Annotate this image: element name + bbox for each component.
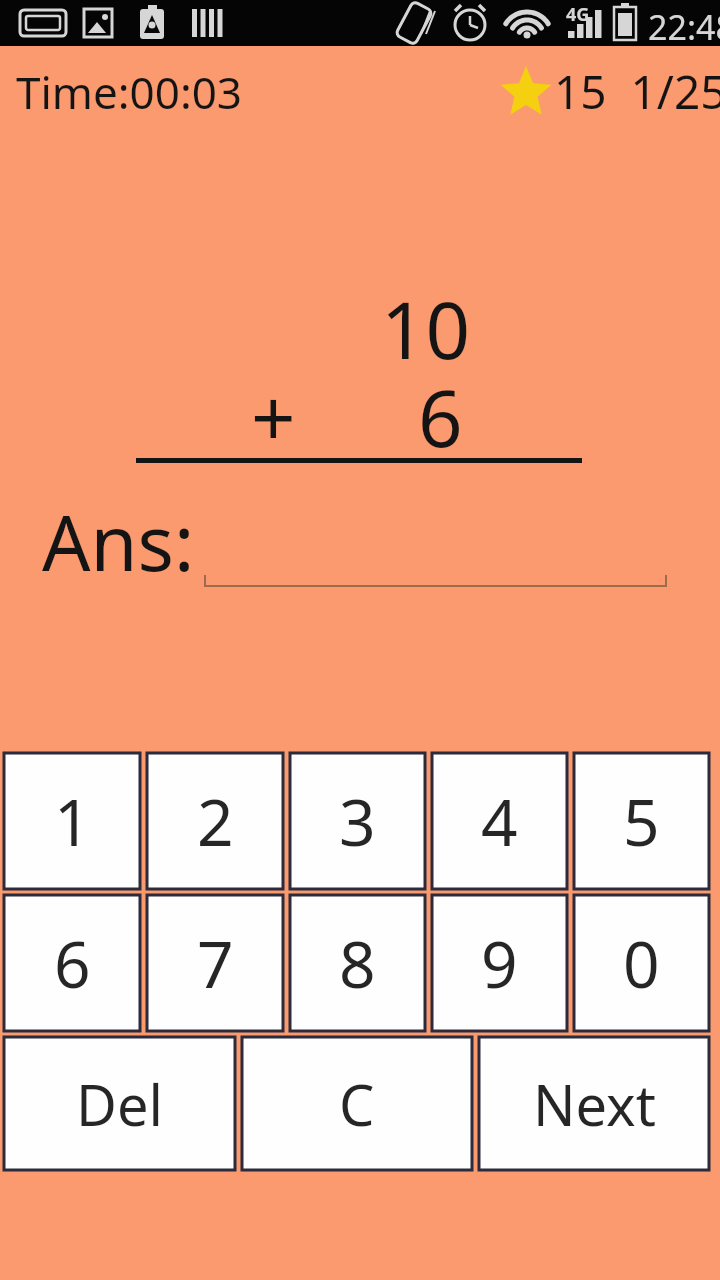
button[interactable]: Del [4, 1037, 235, 1170]
button[interactable]: 4 [432, 753, 567, 889]
staticText: 15 1/25 [554, 60, 720, 123]
button[interactable]: Next [479, 1037, 709, 1170]
staticText: 0 [623, 920, 660, 1007]
staticText: 3 [339, 778, 376, 865]
staticText: Time:00:03 [16, 62, 243, 122]
staticText: Next [533, 1066, 656, 1142]
staticText: 4 [481, 778, 518, 865]
staticText: 5 [623, 778, 660, 865]
button[interactable]: 6 [4, 895, 140, 1031]
staticText: 8 [339, 920, 376, 1007]
staticText: + [251, 364, 296, 470]
button[interactable]: 0 [574, 895, 709, 1031]
staticText: 4G [566, 2, 590, 27]
button[interactable]: 9 [432, 895, 567, 1031]
button[interactable]: 7 [147, 895, 283, 1031]
staticText: 6 [418, 364, 463, 470]
staticText: 10 [381, 276, 471, 382]
button[interactable]: 3 [290, 753, 425, 889]
staticText: 7 [197, 920, 234, 1007]
button[interactable]: 2 [147, 753, 283, 889]
staticText: Ans: [42, 490, 195, 594]
button[interactable]: C [242, 1037, 472, 1170]
staticText: 1 [54, 778, 91, 865]
button[interactable]: 5 [574, 753, 709, 889]
staticText: 6 [54, 920, 91, 1007]
staticText: 22:48 [648, 4, 720, 50]
staticText: 9 [481, 920, 518, 1007]
staticText: Del [76, 1066, 163, 1142]
staticText: 2 [197, 778, 234, 865]
staticText: C [339, 1066, 375, 1142]
button[interactable]: 1 [4, 753, 140, 889]
button[interactable]: 8 [290, 895, 425, 1031]
